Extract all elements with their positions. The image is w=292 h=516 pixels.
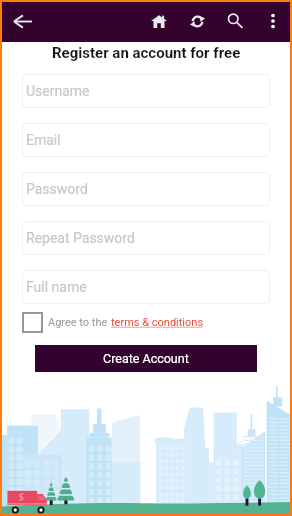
- staticText: Repeat Password: [26, 230, 135, 246]
- button[interactable]: Refresh: [178, 0, 216, 42]
- staticText: Agree to the: [48, 316, 111, 329]
- staticText: Register an account for free: [52, 44, 241, 62]
- staticText: Password: [26, 181, 88, 197]
- button[interactable]: Home: [140, 0, 178, 42]
- button[interactable]: Create Account: [35, 345, 257, 372]
- staticText: Username: [26, 83, 90, 99]
- button[interactable]: Search: [216, 0, 254, 42]
- button[interactable]: Full name: [22, 270, 270, 304]
- button[interactable]: Password: [22, 172, 270, 206]
- button[interactable]: Repeat Password: [22, 221, 270, 255]
- button[interactable]: Back: [6, 5, 38, 37]
- staticText: Email: [26, 132, 61, 148]
- button[interactable]: More options: [254, 0, 292, 42]
- staticText: Create Account: [103, 351, 189, 366]
- button[interactable]: Email: [22, 123, 270, 157]
- staticText: Full name: [26, 279, 87, 295]
- button[interactable]: Agree to the terms and conditions: [22, 312, 43, 333]
- button[interactable]: Username: [22, 74, 270, 108]
- button[interactable]: terms & conditions: [111, 316, 204, 329]
